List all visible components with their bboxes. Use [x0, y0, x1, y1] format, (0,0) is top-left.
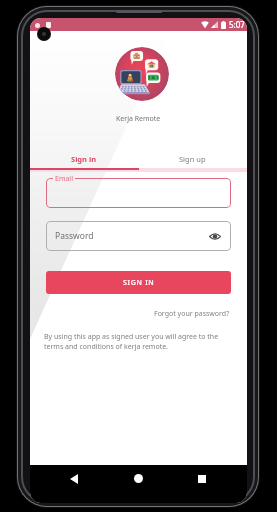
button[interactable]: Back — [63, 468, 84, 489]
staticText: Email — [55, 174, 73, 182]
staticText: Kerja Remote — [116, 114, 161, 124]
button[interactable]: Show password — [208, 230, 221, 243]
staticText: By using this app as signed user you wil… — [44, 332, 219, 352]
staticText: 5:07 — [229, 19, 245, 30]
button[interactable] — [46, 178, 231, 208]
staticText: Password — [55, 230, 94, 242]
button[interactable]: SIGN IN — [46, 271, 231, 294]
staticText: SIGN IN — [123, 278, 155, 288]
staticText: Forgot your password? — [154, 309, 230, 319]
staticText: Sign in — [71, 154, 97, 164]
button[interactable]: Sign up — [138, 150, 247, 168]
button[interactable]: Recent apps — [191, 468, 212, 489]
button[interactable]: Password — [46, 221, 231, 251]
button[interactable]: Home — [128, 468, 149, 489]
button[interactable]: Forgot your password? — [154, 309, 230, 319]
staticText: Sign up — [179, 154, 206, 164]
button[interactable]: Sign in — [30, 150, 138, 168]
